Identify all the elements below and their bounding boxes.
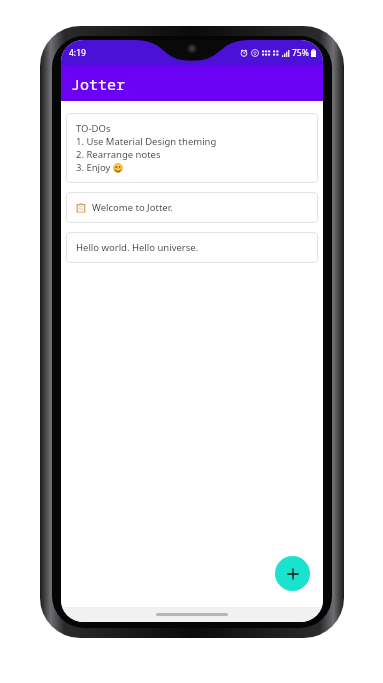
staticText: 2. Rearrange notes xyxy=(76,148,161,161)
button[interactable]: Hello world. Hello universe. xyxy=(66,232,318,263)
button[interactable]: Jotter xyxy=(61,66,323,101)
staticText: 1. Use Material Design theming xyxy=(76,135,217,148)
button[interactable]: Add note xyxy=(275,556,310,591)
button[interactable]: Home gesture bar xyxy=(156,613,228,616)
staticText: Jotter xyxy=(71,74,126,94)
staticText: 75% xyxy=(292,47,309,59)
button[interactable]: Welcome to Jotter. xyxy=(66,192,318,223)
staticText: 3. Enjoy xyxy=(76,161,113,174)
staticText: TO-DOs xyxy=(76,122,111,135)
staticText: Hello world. Hello universe. xyxy=(76,241,199,254)
button[interactable]: TO-DOs xyxy=(66,113,318,183)
staticText: 4:19 xyxy=(69,47,86,59)
staticText: Welcome to Jotter. xyxy=(92,201,173,214)
